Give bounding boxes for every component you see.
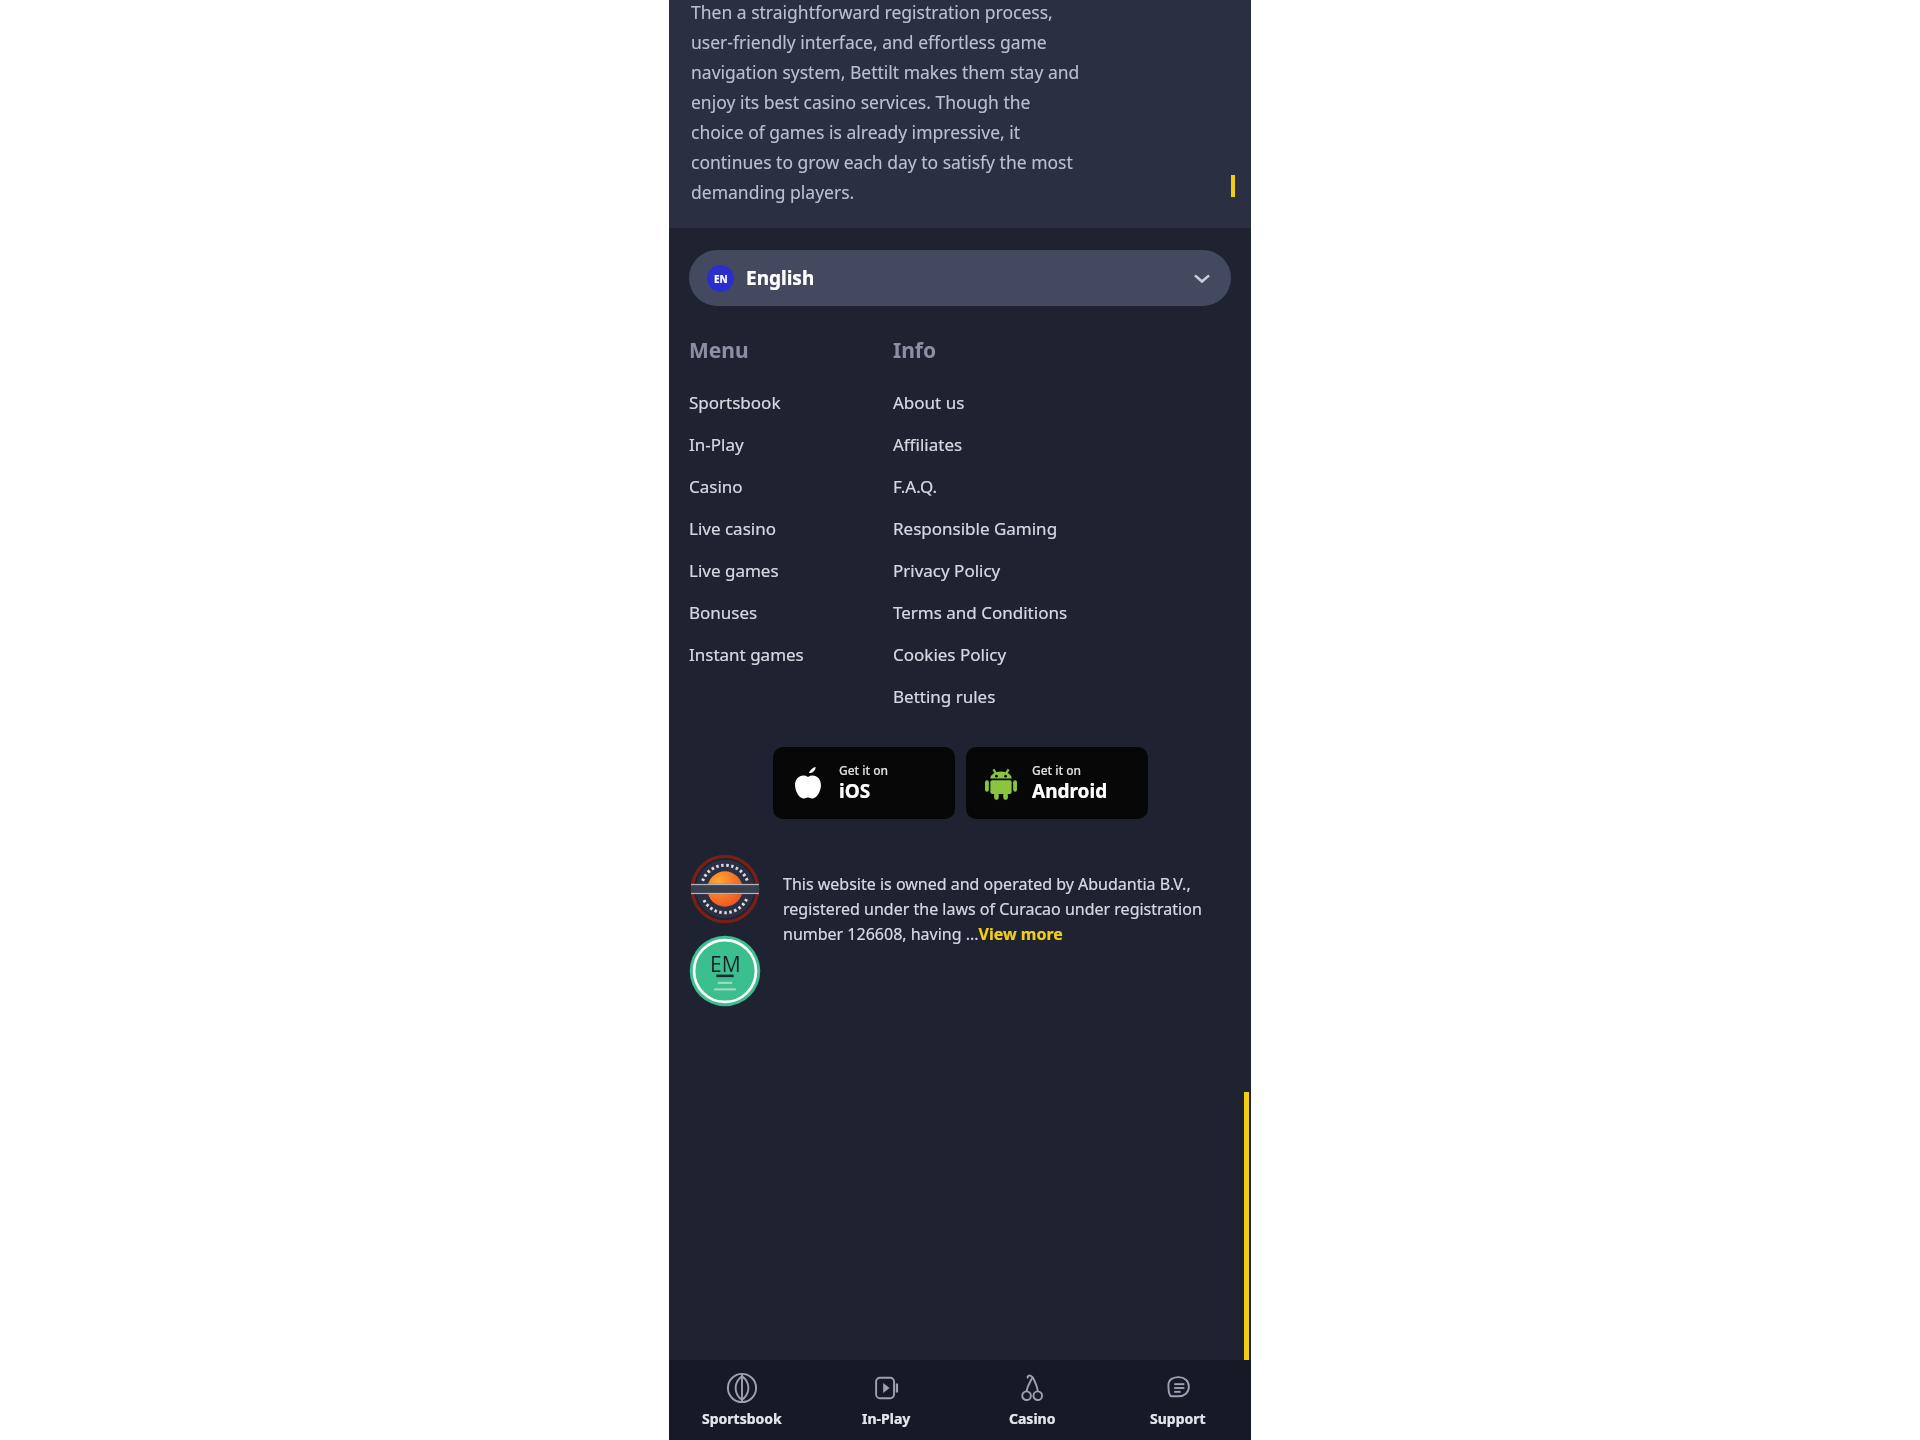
button[interactable]: F.A.Q. (893, 465, 1251, 507)
button[interactable]: Betting rules (893, 675, 1251, 717)
staticText: English (746, 265, 815, 291)
staticText: Sportsbook (689, 391, 781, 414)
button[interactable]: In-Play (814, 1360, 959, 1440)
button[interactable]: In-Play (689, 423, 859, 465)
staticText: This website is owned and operated by Ab… (783, 873, 1237, 944)
button[interactable]: Cookies Policy (893, 633, 1251, 675)
button[interactable]: Get it on (966, 747, 1148, 819)
staticText: F.A.Q. (893, 475, 938, 498)
staticText: Then a straightforward registration proc… (691, 0, 1080, 204)
staticText: In-Play (689, 433, 744, 456)
staticText: Instant games (689, 643, 804, 666)
staticText: EN (714, 272, 728, 286)
button[interactable]: Terms and Conditions (893, 591, 1251, 633)
button[interactable]: Sportsbook (669, 1360, 814, 1440)
button[interactable]: Casino (689, 465, 859, 507)
staticText: Casino (689, 475, 743, 498)
staticText: Support (1150, 1409, 1206, 1428)
button[interactable]: Get it on (773, 747, 955, 819)
staticText: Betting rules (893, 685, 996, 708)
button[interactable]: About us (893, 381, 1251, 423)
button[interactable]: Responsible Gaming (893, 507, 1251, 549)
staticText: Affiliates (893, 433, 963, 456)
staticText: Live casino (689, 517, 776, 540)
button[interactable]: Live casino (689, 507, 859, 549)
button[interactable]: Affiliates (893, 423, 1251, 465)
staticText: Responsible Gaming (893, 517, 1058, 540)
staticText: Cookies Policy (893, 643, 1007, 666)
staticText: In-Play (862, 1409, 911, 1428)
staticText: Sportsbook (702, 1409, 782, 1428)
staticText: iOS (839, 778, 871, 804)
button[interactable]: Instant games (689, 633, 859, 675)
button[interactable]: Sportsbook (689, 381, 859, 423)
button[interactable]: Support (1105, 1360, 1251, 1440)
button[interactable]: Bonuses (689, 591, 859, 633)
button[interactable]: Casino (959, 1360, 1105, 1440)
staticText: EM (710, 950, 741, 979)
staticText: Bonuses (689, 601, 758, 624)
staticText: Casino (1009, 1409, 1056, 1428)
button[interactable]: Privacy Policy (893, 549, 1251, 591)
staticText: Terms and Conditions (893, 601, 1068, 624)
staticText: Get it on (1032, 762, 1082, 778)
staticText: Menu (689, 336, 749, 365)
staticText: Android (1032, 778, 1108, 804)
staticText: Get it on (839, 762, 889, 778)
staticText: Privacy Policy (893, 559, 1001, 582)
staticText: Info (893, 336, 937, 365)
staticText: About us (893, 391, 965, 414)
staticText: Live games (689, 559, 779, 582)
button[interactable]: Live games (689, 549, 859, 591)
button[interactable]: EN (689, 250, 1231, 306)
